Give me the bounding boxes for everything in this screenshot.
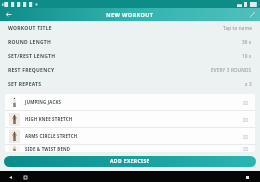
- staticText: REST FREQUENCY: [8, 67, 55, 74]
- button[interactable]: Reorder: [241, 145, 250, 152]
- staticText: ARMS CIRCLE STRETCH: [25, 133, 78, 139]
- button[interactable]: WORKOUT TITLE: [0, 21, 260, 35]
- button[interactable]: HIGH KNEE STRETCH: [5, 111, 255, 127]
- button[interactable]: Edit: [244, 8, 260, 21]
- staticText: SET REPEATS: [8, 81, 42, 88]
- staticText: WORKOUT TITLE: [8, 25, 52, 32]
- button[interactable]: Back: [5, 172, 15, 182]
- staticText: HIGH KNEE STRETCH: [25, 116, 73, 122]
- button[interactable]: Reorder: [241, 131, 250, 142]
- button[interactable]: SET REPEATS: [0, 77, 260, 91]
- button[interactable]: SET/REST LENGTH: [0, 49, 260, 63]
- button[interactable]: Recents: [242, 172, 252, 182]
- staticText: x 3: [245, 81, 252, 87]
- button[interactable]: SIDE & TWIST BEND: [5, 145, 255, 152]
- button[interactable]: Reorder: [241, 114, 250, 125]
- staticText: SIDE & TWIST BEND: [25, 146, 71, 152]
- staticText: SET/REST LENGTH: [8, 53, 56, 60]
- staticText: Tap to name: [223, 25, 252, 31]
- button[interactable]: ADD EXERCISE: [4, 156, 256, 167]
- staticText: ADD EXERCISE: [110, 158, 150, 165]
- staticText: NEW WORKOUT: [106, 11, 154, 19]
- staticText: 30 s: [242, 39, 252, 45]
- staticText: EVERY 3 ROUNDS: [211, 67, 252, 73]
- button[interactable]: ROUND LENGTH: [0, 35, 260, 49]
- button[interactable]: ARMS CIRCLE STRETCH: [5, 128, 255, 144]
- button[interactable]: REST FREQUENCY: [0, 63, 260, 77]
- button[interactable]: JUMPING JACKS: [5, 94, 255, 110]
- staticText: ROUND LENGTH: [8, 39, 52, 46]
- button[interactable]: Reorder: [241, 97, 250, 108]
- button[interactable]: Home: [20, 172, 30, 182]
- staticText: 10 s: [242, 53, 252, 59]
- staticText: JUMPING JACKS: [25, 99, 62, 105]
- button[interactable]: Back: [0, 8, 16, 21]
